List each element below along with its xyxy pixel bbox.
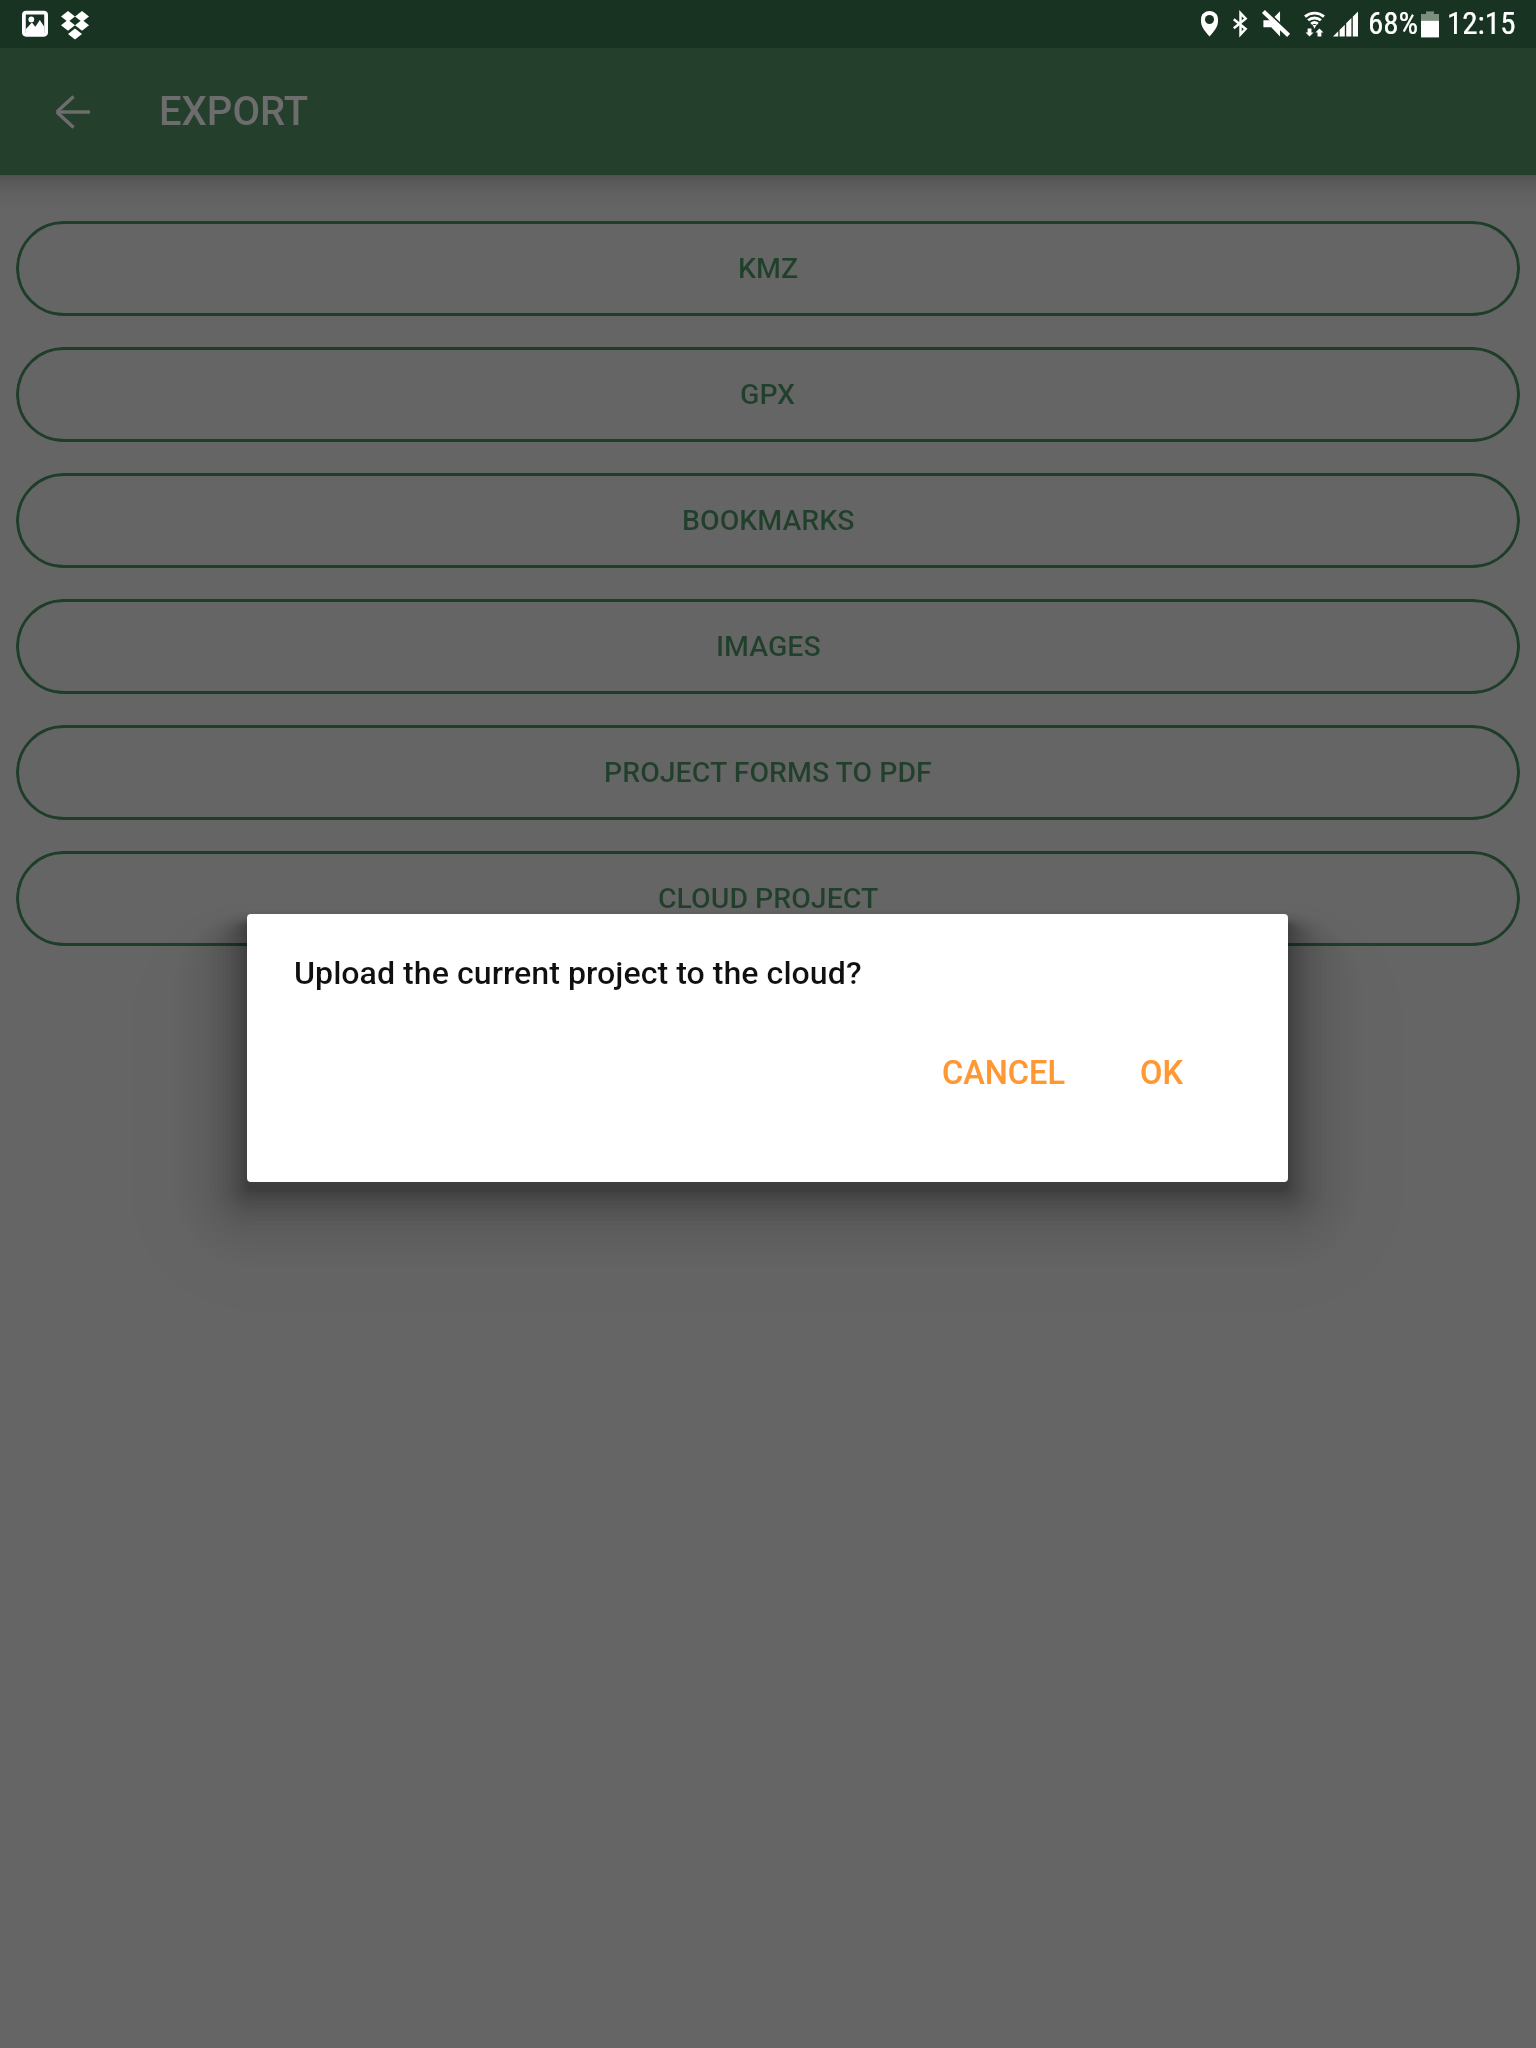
staticText: CANCEL	[942, 1054, 1065, 1092]
staticText: Upload the current project to the cloud?	[294, 954, 862, 992]
staticText: 68%	[1368, 5, 1419, 41]
button[interactable]: IMAGES	[16, 599, 1520, 694]
button[interactable]: OK	[1116, 1038, 1207, 1108]
staticText: CLOUD PROJECT	[658, 882, 879, 915]
staticText: GPX	[740, 378, 796, 411]
staticText: EXPORT	[159, 88, 309, 135]
button[interactable]: CLOUD PROJECT	[16, 851, 1520, 946]
button[interactable]: PROJECT FORMS TO PDF	[16, 725, 1520, 820]
staticText: 12:15	[1447, 5, 1516, 41]
staticText: KMZ	[738, 252, 799, 285]
button[interactable]: BOOKMARKS	[16, 473, 1520, 568]
staticText: IMAGES	[716, 630, 821, 663]
staticText: OK	[1140, 1054, 1183, 1092]
button[interactable]: CANCEL	[918, 1038, 1089, 1108]
staticText: PROJECT FORMS TO PDF	[604, 756, 932, 789]
button[interactable]: Back	[26, 64, 122, 160]
button[interactable]: KMZ	[16, 221, 1520, 316]
staticText: BOOKMARKS	[682, 504, 855, 537]
button[interactable]: GPX	[16, 347, 1520, 442]
